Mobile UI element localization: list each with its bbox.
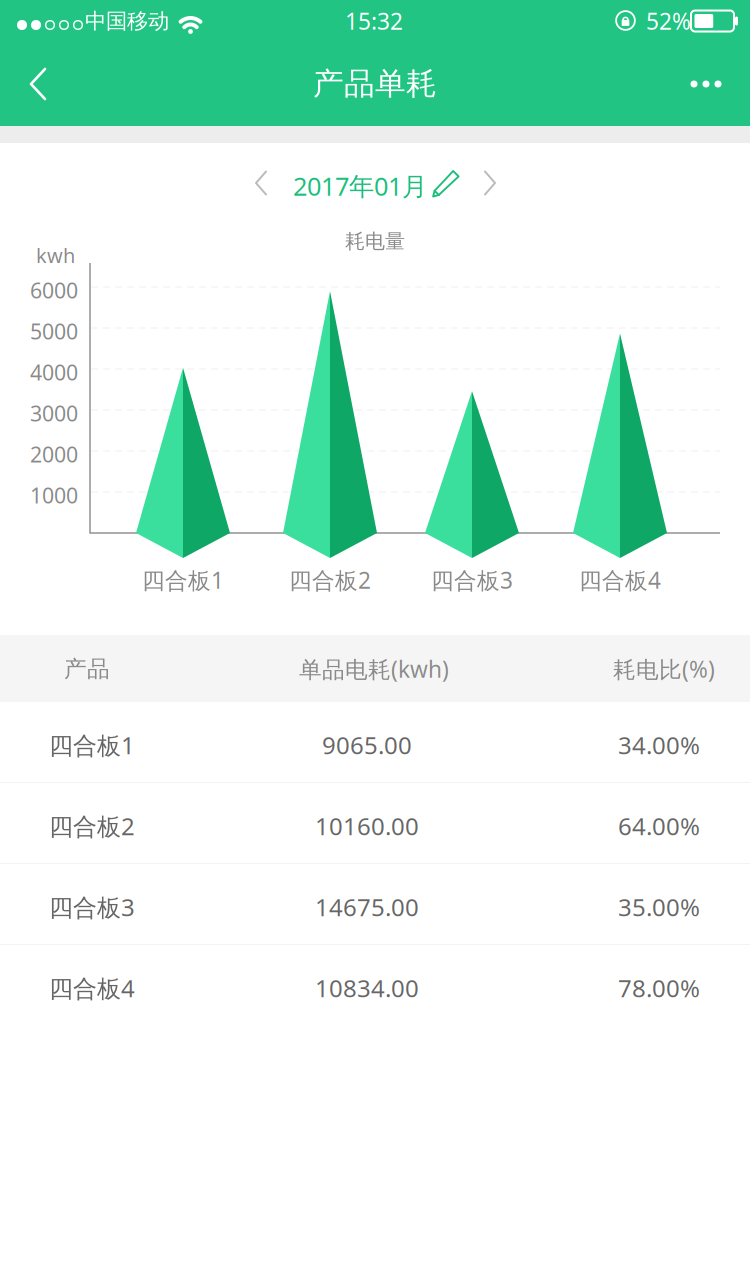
staticText: 单品电耗(kwh) [299, 654, 449, 684]
staticText: 四合板1 [49, 729, 135, 761]
staticText: 10160.00 [315, 810, 419, 842]
button[interactable]: 四合板3 [0, 864, 750, 944]
staticText: 10834.00 [315, 972, 419, 1004]
button[interactable]: 上个月 [239, 157, 283, 209]
staticText: 耗电比(%) [613, 654, 715, 684]
staticText: 四合板2 [289, 565, 371, 595]
staticText: 14675.00 [315, 891, 419, 923]
staticText: 四合板1 [142, 565, 224, 595]
button[interactable]: 下个月 [468, 157, 512, 209]
button[interactable]: 更多 [675, 50, 737, 118]
staticText: 64.00% [618, 810, 700, 842]
staticText: 15:32 [345, 6, 403, 36]
button[interactable]: 返回 [15, 50, 61, 118]
staticText: 3000 [30, 399, 78, 427]
staticText: 9065.00 [322, 729, 412, 761]
staticText: 34.00% [618, 729, 700, 761]
staticText: 四合板4 [49, 972, 135, 1004]
staticText: 2017年01月 [293, 169, 427, 203]
staticText: 1000 [30, 481, 78, 509]
staticText: 产品单耗 [313, 65, 437, 103]
staticText: 35.00% [618, 891, 700, 923]
staticText: 78.00% [618, 972, 700, 1004]
staticText: 耗电量 [345, 229, 405, 254]
staticText: 中国移动 [85, 8, 169, 34]
staticText: 四合板2 [49, 810, 135, 842]
staticText: 52% [646, 6, 691, 36]
button[interactable]: 四合板4 [0, 945, 750, 1025]
staticText: 2000 [30, 440, 78, 468]
button[interactable]: 编辑 [431, 168, 461, 198]
staticText: 四合板3 [431, 565, 513, 595]
staticText: 5000 [30, 317, 78, 345]
staticText: 四合板4 [579, 565, 661, 595]
button[interactable]: 四合板2 [0, 783, 750, 863]
staticText: 4000 [30, 358, 78, 386]
staticText: 四合板3 [49, 891, 135, 923]
staticText: 6000 [30, 276, 78, 304]
button[interactable]: 四合板1 [0, 702, 750, 782]
staticText: kwh [36, 242, 75, 269]
staticText: 产品 [64, 655, 110, 683]
